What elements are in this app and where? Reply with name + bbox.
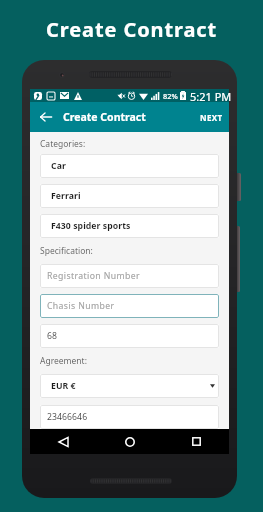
- staticText: F430 spider sports: [51, 220, 131, 232]
- button[interactable]: Chasis Number: [40, 294, 219, 318]
- staticText: Create Contract: [63, 110, 146, 124]
- button[interactable]: Home: [97, 429, 163, 454]
- button[interactable]: Back: [35, 102, 56, 132]
- staticText: Categories:: [40, 138, 86, 150]
- button[interactable]: F430 spider sports: [40, 214, 219, 238]
- button[interactable]: Ferrari: [40, 184, 219, 208]
- staticText: Chasis Number: [47, 300, 115, 312]
- staticText: Agreement:: [40, 355, 87, 367]
- staticText: Specification:: [40, 245, 93, 257]
- staticText: Create Contract: [46, 16, 218, 43]
- staticText: EUR €: [51, 380, 76, 392]
- button[interactable]: EUR €: [40, 374, 219, 398]
- button[interactable]: Recent apps: [163, 429, 229, 454]
- staticText: NEXT: [200, 112, 223, 123]
- staticText: Car: [51, 160, 66, 172]
- button[interactable]: Registration Number: [40, 264, 219, 288]
- staticText: 5:21 PM: [190, 89, 232, 102]
- staticText: 82%: [163, 91, 178, 101]
- button[interactable]: 23466646: [40, 405, 219, 429]
- staticText: Ferrari: [51, 190, 81, 202]
- staticText: 68: [47, 330, 58, 342]
- button[interactable]: 68: [40, 324, 219, 348]
- button[interactable]: NEXT: [194, 102, 229, 132]
- button[interactable]: Back: [30, 429, 97, 454]
- button[interactable]: Car: [40, 154, 219, 178]
- staticText: 23466646: [47, 411, 88, 423]
- staticText: Registration Number: [47, 270, 140, 282]
